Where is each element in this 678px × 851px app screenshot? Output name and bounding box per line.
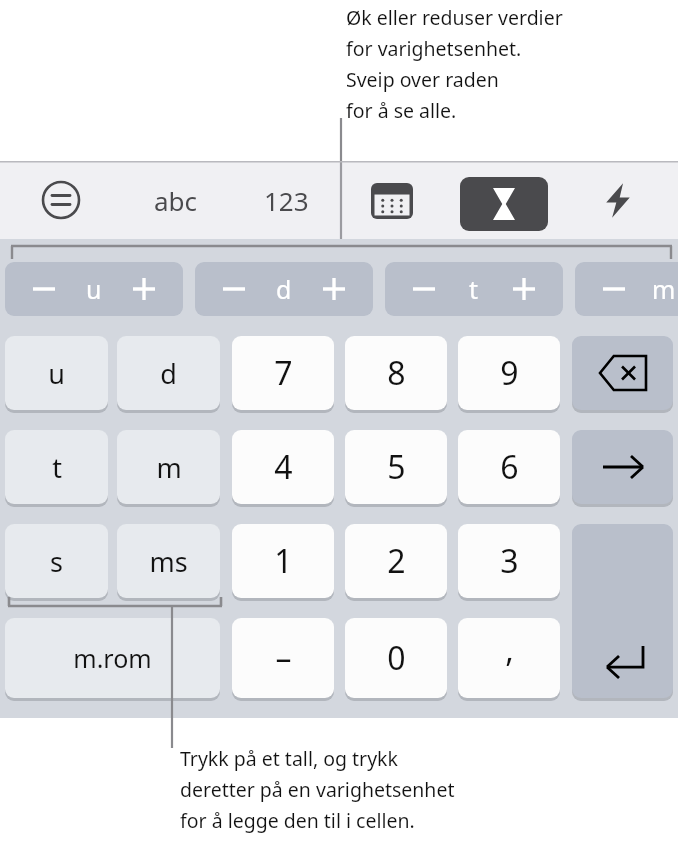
staticText: t xyxy=(469,272,479,306)
staticText: m.rom xyxy=(73,641,152,675)
button[interactable]: Delete xyxy=(572,336,673,410)
button[interactable]: t xyxy=(385,262,563,316)
staticText: Øk eller reduser verdier for varighetsen… xyxy=(346,4,563,124)
staticText: 2 xyxy=(387,539,406,583)
button[interactable]: 7 xyxy=(232,336,334,410)
button[interactable]: – xyxy=(232,618,334,698)
staticText: , xyxy=(505,628,514,672)
button[interactable]: 3 xyxy=(458,524,560,598)
button[interactable]: Date xyxy=(371,183,413,219)
staticText: abc xyxy=(154,183,198,218)
staticText: u xyxy=(48,355,65,392)
staticText: ms xyxy=(149,543,188,580)
staticText: d xyxy=(276,272,292,306)
button[interactable]: 0 xyxy=(345,618,447,698)
button[interactable]: Actions xyxy=(597,179,639,221)
button[interactable]: Formula xyxy=(41,180,81,220)
button[interactable]: Return xyxy=(572,524,673,698)
staticText: Trykk på et tall, og trykk deretter på e… xyxy=(180,745,455,834)
button[interactable]: 9 xyxy=(458,336,560,410)
button[interactable]: m xyxy=(117,430,220,504)
staticText: 123 xyxy=(264,183,309,218)
staticText: 0 xyxy=(387,636,406,680)
staticText: m xyxy=(156,449,182,486)
staticText: u xyxy=(86,272,102,306)
button[interactable]: , xyxy=(458,618,560,698)
staticText: 4 xyxy=(274,445,293,489)
button[interactable]: 123 xyxy=(248,177,324,223)
staticText: 5 xyxy=(387,445,406,489)
button[interactable]: 2 xyxy=(345,524,447,598)
button[interactable]: m xyxy=(575,262,678,316)
button[interactable]: u xyxy=(5,336,108,410)
staticText: 1 xyxy=(274,539,293,583)
button[interactable]: ms xyxy=(117,524,220,598)
button[interactable]: abc xyxy=(138,177,214,223)
button[interactable]: d xyxy=(117,336,220,410)
button[interactable]: 4 xyxy=(232,430,334,504)
button[interactable]: 6 xyxy=(458,430,560,504)
staticText: m xyxy=(652,272,676,306)
button[interactable]: u xyxy=(5,262,183,316)
staticText: 9 xyxy=(500,351,519,395)
staticText: s xyxy=(50,543,63,580)
button[interactable]: 5 xyxy=(345,430,447,504)
button[interactable]: t xyxy=(5,430,108,504)
staticText: 6 xyxy=(500,445,519,489)
button[interactable]: d xyxy=(195,262,373,316)
button[interactable]: Tab xyxy=(572,430,673,504)
button[interactable]: 1 xyxy=(232,524,334,598)
button[interactable]: s xyxy=(5,524,108,598)
staticText: t xyxy=(52,449,62,486)
staticText: 8 xyxy=(387,351,406,395)
staticText: 3 xyxy=(500,539,519,583)
button[interactable]: Duration xyxy=(460,177,548,231)
button[interactable]: m.rom xyxy=(5,618,220,698)
staticText: – xyxy=(275,636,292,680)
button[interactable]: 8 xyxy=(345,336,447,410)
staticText: d xyxy=(160,355,177,392)
staticText: 7 xyxy=(274,351,293,395)
